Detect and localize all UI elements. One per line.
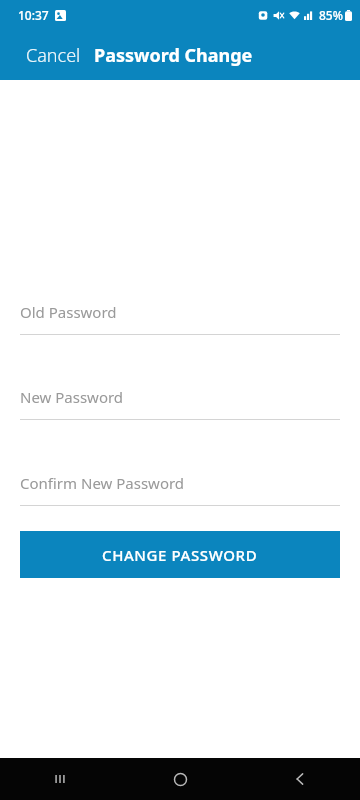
button[interactable]: Old Password: [20, 302, 340, 335]
staticText: New Password: [20, 387, 124, 407]
staticText: Confirm New Password: [20, 473, 185, 493]
staticText: CHANGE PASSWORD: [102, 545, 258, 565]
staticText: 85%: [319, 7, 343, 23]
button[interactable]: CHANGE PASSWORD: [20, 531, 340, 578]
button[interactable]: Recent apps: [0, 758, 120, 800]
staticText: Old Password: [20, 302, 117, 322]
button[interactable]: Cancel: [26, 43, 81, 68]
button[interactable]: New Password: [20, 387, 340, 420]
staticText: Cancel: [26, 43, 81, 68]
staticText: Password Change: [94, 43, 253, 68]
button[interactable]: Back: [240, 758, 360, 800]
button[interactable]: Home: [120, 758, 240, 800]
staticText: 10:37: [18, 7, 49, 23]
button[interactable]: Confirm New Password: [20, 473, 340, 506]
